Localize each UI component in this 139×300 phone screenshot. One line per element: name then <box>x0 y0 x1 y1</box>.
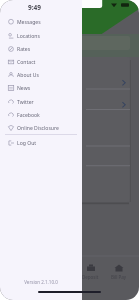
button[interactable]: Contact <box>0 56 82 68</box>
staticText: About Us <box>17 72 39 79</box>
staticText: Contact <box>17 59 36 66</box>
button[interactable]: Deposit <box>76 264 105 280</box>
staticText: 9:49 <box>28 3 41 12</box>
button[interactable]: Online Disclosure <box>0 122 82 134</box>
button[interactable]: About Us <box>0 69 82 81</box>
staticText: Version 2.1.10.0 <box>0 279 82 285</box>
button[interactable]: Log Out <box>0 137 82 149</box>
staticText: News <box>17 85 31 92</box>
staticText: Bill Pay <box>111 274 127 280</box>
button[interactable]: Messages <box>0 16 82 28</box>
staticText: Log Out <box>17 140 37 147</box>
button[interactable]: Bill Pay <box>104 264 133 280</box>
button[interactable]: News <box>0 82 82 94</box>
staticText: Facebook <box>17 112 40 119</box>
button[interactable]: Twitter <box>0 96 82 108</box>
staticText: Rates <box>17 46 31 53</box>
staticText: Messages <box>17 19 41 26</box>
button[interactable]: Rates <box>0 43 82 55</box>
staticText: Online Disclosure <box>17 125 59 132</box>
staticText: Twitter <box>17 99 34 106</box>
button[interactable]: Locations <box>0 30 82 42</box>
staticText: Locations <box>17 33 40 40</box>
staticText: Deposit <box>82 274 99 280</box>
button[interactable]: Facebook <box>0 109 82 121</box>
